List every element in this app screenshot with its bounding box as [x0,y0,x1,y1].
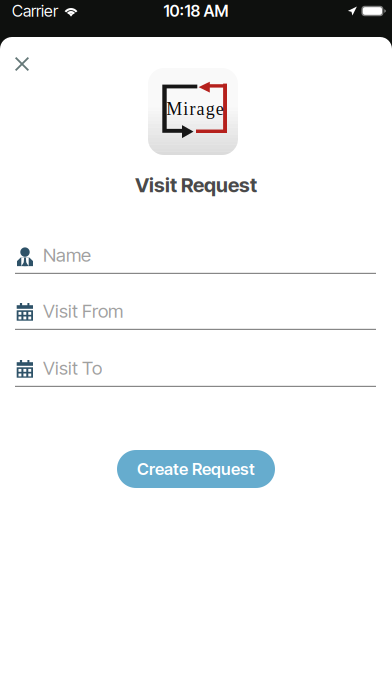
staticText: Create Request [137,459,255,479]
staticText: Name [43,244,91,266]
staticText: Carrier [12,1,58,21]
button[interactable]: Visit To [15,356,376,387]
button[interactable]: Name [15,243,376,274]
staticText: Visit Request [135,173,257,197]
staticText: Visit From [43,300,123,322]
staticText: Visit To [43,357,102,379]
staticText: Mirage [166,99,224,119]
staticText: 10:18 AM [163,1,228,21]
button[interactable]: Create Request [117,450,275,488]
button[interactable]: Close [6,49,38,79]
button[interactable]: Visit From [15,299,376,330]
